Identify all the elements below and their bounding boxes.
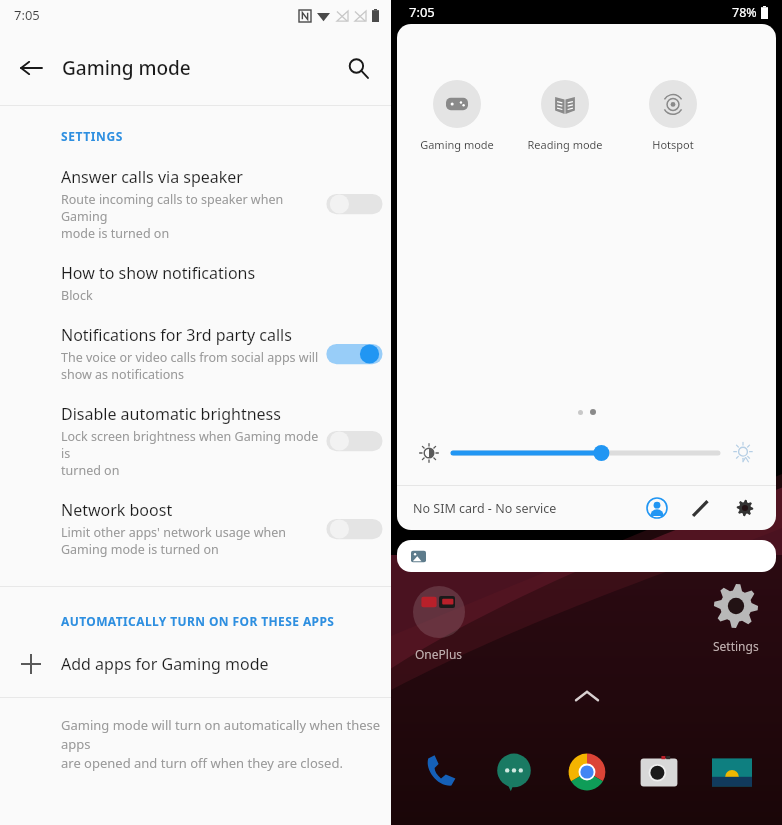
staticText: Gaming mode will turn on automatically w…: [61, 716, 391, 772]
staticText: Network boost: [61, 499, 173, 521]
staticText: Answer calls via speaker: [61, 166, 243, 188]
button[interactable]: Answer calls via speaker: [0, 160, 391, 256]
button[interactable]: Gaming mode: [419, 80, 495, 152]
button[interactable]: Messages: [491, 749, 537, 795]
button[interactable]: [397, 540, 776, 572]
staticText: Gaming mode: [62, 55, 191, 81]
button[interactable]: Chrome: [564, 749, 610, 795]
button[interactable]: Reading mode: [527, 80, 603, 152]
staticText: Add apps for Gaming mode: [61, 653, 269, 675]
button[interactable]: Back: [10, 47, 52, 89]
button[interactable]: Add apps for Gaming mode: [0, 641, 391, 687]
button[interactable]: User: [642, 493, 672, 523]
staticText: No SIM card - No service: [413, 500, 557, 517]
button[interactable]: OnePlus: [413, 586, 465, 662]
button[interactable]: Edit: [686, 493, 716, 523]
staticText: Settings: [713, 638, 759, 654]
staticText: Notifications for 3rd party calls: [61, 324, 292, 346]
button[interactable]: Settings: [730, 493, 760, 523]
staticText: Gaming mode: [420, 137, 494, 152]
button[interactable]: Gallery: [709, 749, 755, 795]
button[interactable]: Phone: [418, 749, 464, 795]
staticText: How to show notifications: [61, 262, 256, 284]
staticText: 7:05: [14, 6, 40, 24]
button[interactable]: [331, 516, 377, 542]
button[interactable]: [331, 191, 377, 217]
staticText: Block: [61, 287, 93, 304]
button[interactable]: How to show notifications: [0, 256, 391, 318]
staticText: 78%: [732, 4, 757, 21]
button[interactable]: Brightness: [453, 441, 718, 465]
button[interactable]: [331, 428, 377, 454]
staticText: Hotspot: [652, 137, 694, 152]
staticText: OnePlus: [415, 646, 463, 662]
staticText: Route incoming calls to speaker when Gam…: [61, 191, 321, 242]
staticText: Reading mode: [527, 137, 603, 152]
staticText: Limit other apps' network usage when Gam…: [61, 524, 286, 558]
button[interactable]: Notifications for 3rd party calls: [0, 318, 391, 397]
button[interactable]: Hotspot: [635, 80, 711, 152]
button[interactable]: Camera: [636, 749, 682, 795]
staticText: The voice or video calls from social app…: [61, 349, 319, 383]
button[interactable]: Network boost: [0, 493, 391, 572]
staticText: 7:05: [409, 3, 435, 21]
button[interactable]: Settings: [712, 582, 760, 654]
button[interactable]: Search: [337, 47, 379, 89]
staticText: SETTINGS: [61, 128, 123, 144]
staticText: AUTOMATICALLY TURN ON FOR THESE APPS: [61, 613, 335, 629]
button[interactable]: [331, 341, 377, 367]
staticText: Disable automatic brightness: [61, 403, 281, 425]
staticText: Lock screen brightness when Gaming mode …: [61, 428, 321, 479]
button[interactable]: Disable automatic brightness: [0, 397, 391, 493]
